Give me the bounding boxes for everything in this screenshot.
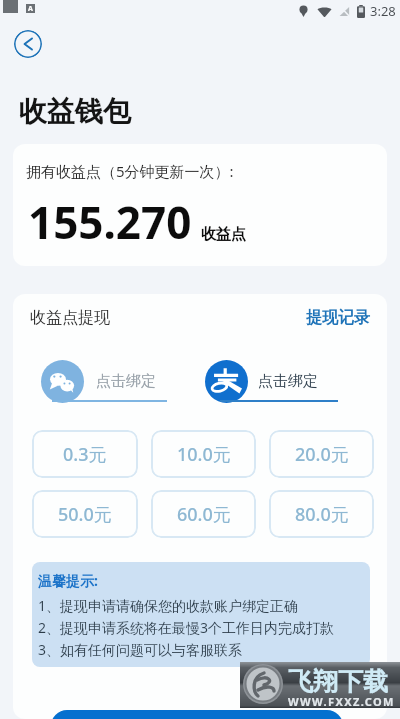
staticText: 拥有收益点（5分钟更新一次）:	[26, 161, 234, 181]
staticText: 10.0元	[177, 442, 231, 467]
button[interactable]: 80.0元	[269, 490, 374, 538]
staticText: 提现记录	[306, 308, 370, 328]
staticText: 点击绑定	[258, 372, 318, 391]
staticText: 3、如有任何问题可以与客服联系	[38, 640, 243, 659]
staticText: 飞翔下载	[288, 666, 388, 697]
button[interactable]: 10.0元	[151, 430, 256, 478]
button[interactable]: 20.0元	[269, 430, 374, 478]
staticText: 收益点	[201, 225, 246, 244]
staticText: 80.0元	[295, 502, 349, 527]
button[interactable]	[51, 710, 343, 719]
button[interactable]: 点击绑定	[205, 360, 323, 408]
button[interactable]: 点击绑定	[41, 360, 156, 408]
staticText: 155.270	[28, 192, 192, 252]
button[interactable]: 0.3元	[32, 430, 138, 478]
staticText: 3:28	[370, 2, 396, 20]
staticText: WWW.FXXZ.COM	[288, 694, 395, 709]
button[interactable]: Back	[14, 30, 42, 58]
staticText: A	[28, 4, 33, 13]
staticText: 0.3元	[63, 442, 107, 467]
staticText: 50.0元	[58, 502, 112, 527]
staticText: 收益点提现	[30, 308, 110, 328]
staticText: 60.0元	[177, 502, 231, 527]
button[interactable]: 60.0元	[151, 490, 256, 538]
staticText: 点击绑定	[96, 372, 156, 391]
button[interactable]: 50.0元	[32, 490, 138, 538]
staticText: 收益钱包	[19, 94, 131, 129]
staticText: 2、提现申请系统将在最慢3个工作日内完成打款	[38, 618, 335, 637]
staticText: 温馨提示:	[38, 571, 98, 590]
button[interactable]: 提现记录	[306, 308, 370, 328]
staticText: 20.0元	[295, 442, 349, 467]
staticText: 1、提现申请请确保您的收款账户绑定正确	[38, 596, 299, 615]
